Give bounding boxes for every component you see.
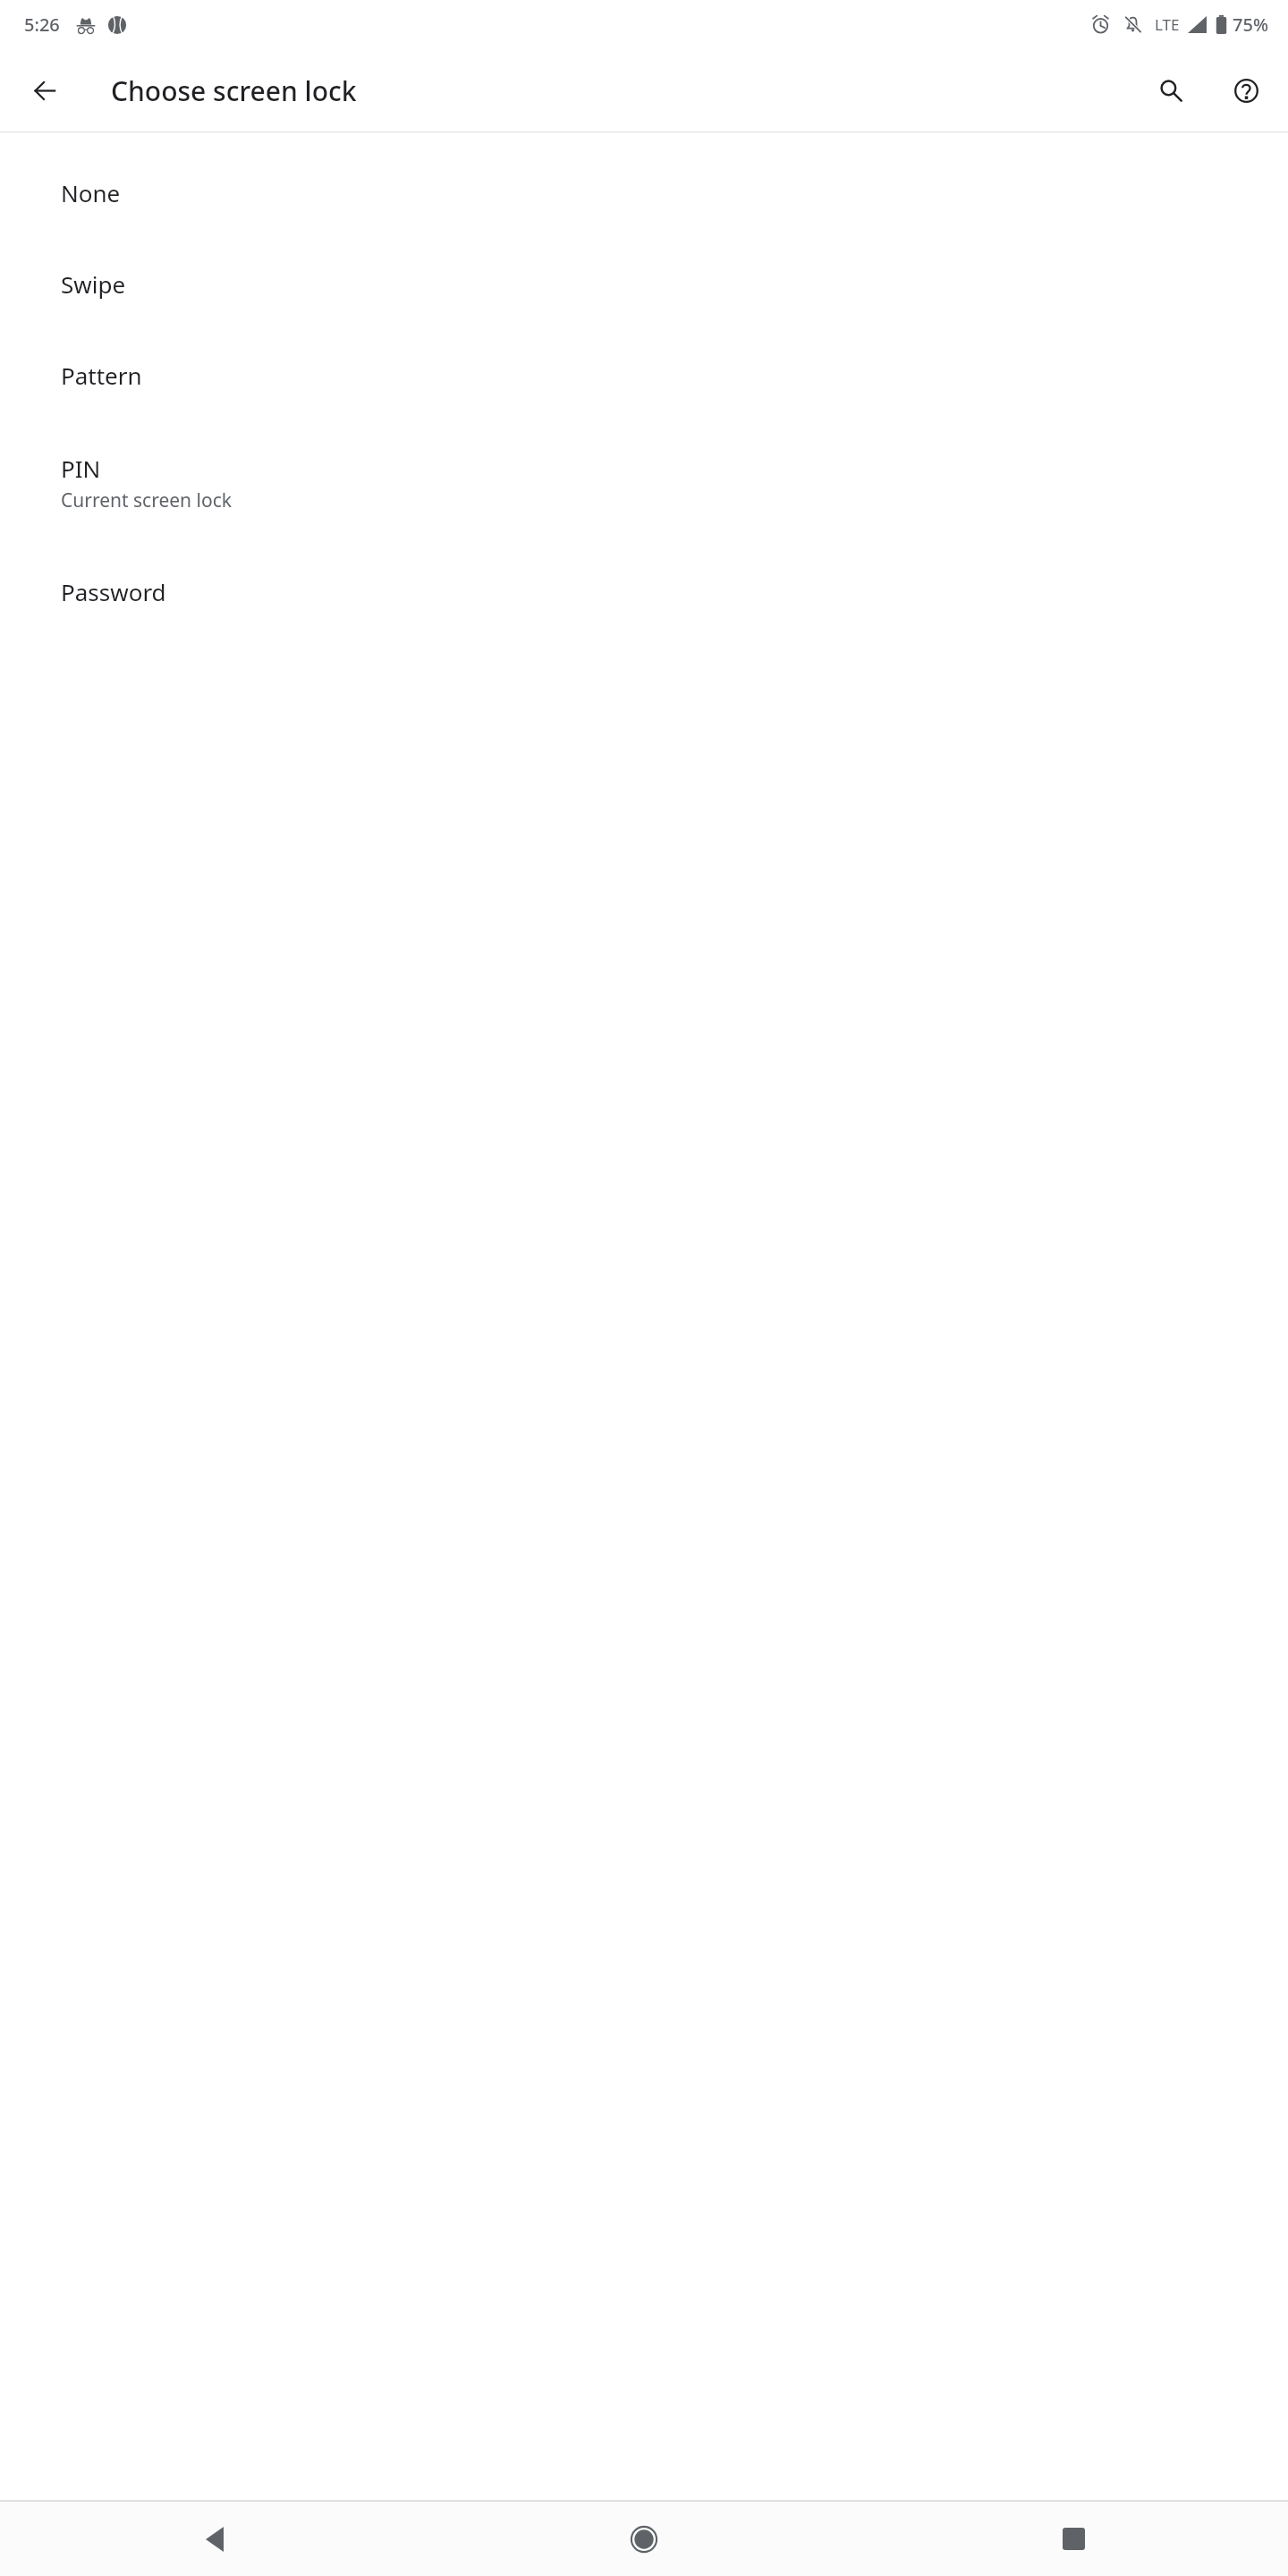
staticText: Choose screen lock bbox=[111, 72, 357, 109]
staticText: 75% bbox=[1233, 13, 1268, 37]
button[interactable]: Pattern bbox=[0, 329, 1288, 420]
button[interactable]: Back bbox=[0, 2502, 429, 2576]
button[interactable]: PIN bbox=[0, 420, 1288, 546]
button[interactable]: Back bbox=[23, 69, 66, 112]
button[interactable]: Search bbox=[1147, 66, 1195, 114]
button[interactable]: Help bbox=[1222, 66, 1270, 114]
staticText: 5:26 bbox=[24, 13, 60, 37]
staticText: Swipe bbox=[61, 268, 126, 300]
button[interactable]: Recent apps bbox=[859, 2502, 1288, 2576]
button[interactable]: Home bbox=[429, 2502, 859, 2576]
button[interactable]: Swipe bbox=[0, 238, 1288, 329]
staticText: Password bbox=[61, 576, 166, 607]
button[interactable]: None bbox=[0, 147, 1288, 238]
staticText: Current screen lock bbox=[61, 487, 232, 513]
staticText: LTE bbox=[1155, 14, 1180, 35]
staticText: PIN bbox=[61, 453, 101, 484]
staticText: Pattern bbox=[61, 360, 142, 391]
staticText: None bbox=[61, 177, 121, 208]
button[interactable]: Password bbox=[0, 546, 1288, 637]
